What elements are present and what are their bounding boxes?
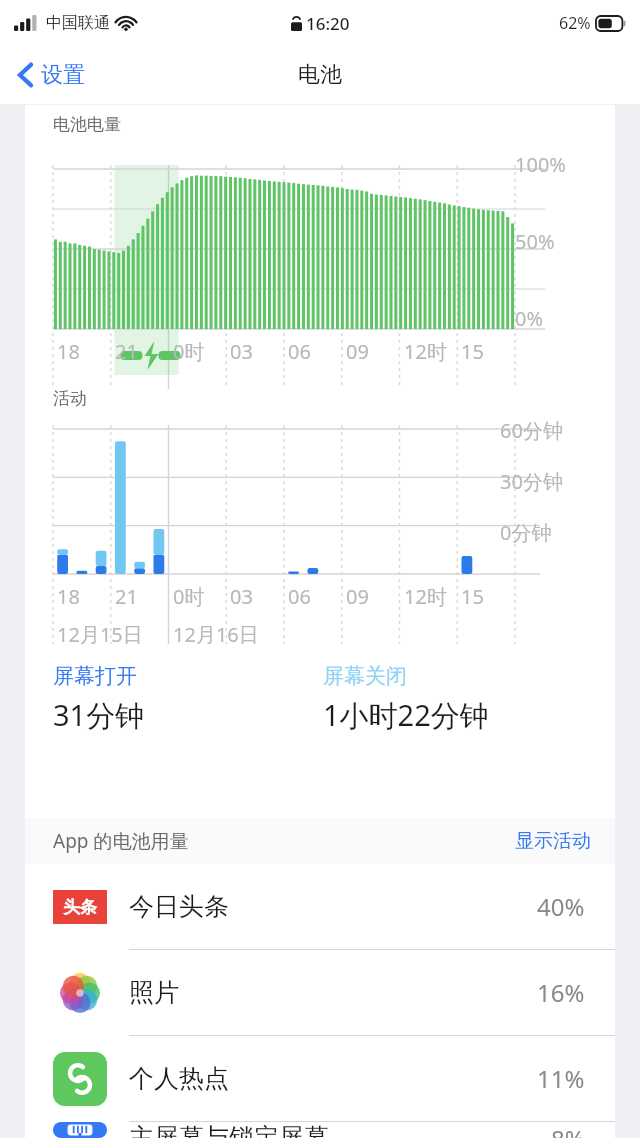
staticText: 60分钟 bbox=[500, 417, 563, 444]
staticText: 31分钟 bbox=[53, 695, 145, 735]
staticText: 0时 bbox=[173, 338, 205, 365]
staticText: 个人热点 bbox=[129, 1063, 229, 1094]
staticText: 12时 bbox=[404, 583, 447, 610]
button[interactable]: 照片 bbox=[25, 950, 615, 1035]
staticText: 设置 bbox=[41, 61, 85, 89]
staticText: 11% bbox=[537, 1062, 585, 1095]
staticText: 06 bbox=[288, 338, 311, 365]
staticText: 40% bbox=[537, 890, 585, 923]
staticText: 09 bbox=[346, 583, 369, 610]
staticText: 09 bbox=[346, 338, 369, 365]
staticText: 12月15日 bbox=[57, 621, 143, 648]
button[interactable]: 头条 bbox=[25, 864, 615, 949]
staticText: 0% bbox=[515, 305, 544, 332]
staticText: 0时 bbox=[173, 583, 205, 610]
staticText: 03 bbox=[230, 583, 253, 610]
staticText: 62% bbox=[559, 12, 591, 34]
staticText: 15 bbox=[461, 583, 484, 610]
button[interactable]: 主屏幕与锁定屏幕 bbox=[25, 1122, 615, 1138]
staticText: 屏幕打开 bbox=[53, 663, 137, 689]
staticText: 06 bbox=[288, 583, 311, 610]
staticText: 照片 bbox=[129, 977, 179, 1008]
staticText: 0分钟 bbox=[500, 519, 552, 546]
staticText: 100% bbox=[515, 151, 566, 178]
staticText: App 的电池用量 bbox=[53, 828, 189, 854]
staticText: 电池 bbox=[298, 61, 342, 89]
staticText: 主屏幕与锁定屏幕 bbox=[129, 1122, 329, 1138]
staticText: 12时 bbox=[404, 338, 447, 365]
staticText: 18 bbox=[57, 338, 80, 365]
staticText: 电池电量 bbox=[53, 114, 121, 135]
button[interactable]: 设置 bbox=[12, 57, 91, 93]
staticText: 活动 bbox=[53, 388, 87, 409]
staticText: 今日头条 bbox=[129, 891, 229, 922]
staticText: 21 bbox=[115, 583, 138, 610]
staticText: 头条 bbox=[63, 897, 97, 918]
staticText: 15 bbox=[461, 338, 484, 365]
staticText: 中国联通 bbox=[46, 13, 110, 33]
staticText: 18 bbox=[57, 583, 80, 610]
button[interactable]: 显示活动 bbox=[515, 823, 615, 859]
staticText: 屏幕关闭 bbox=[323, 663, 407, 689]
staticText: 50% bbox=[515, 228, 555, 255]
staticText: 8% bbox=[551, 1122, 585, 1138]
staticText: 12月16日 bbox=[173, 621, 259, 648]
staticText: 30分钟 bbox=[500, 468, 563, 495]
staticText: 1小时22分钟 bbox=[323, 695, 489, 735]
staticText: 16:20 bbox=[306, 12, 350, 35]
button[interactable]: 个人热点 bbox=[25, 1036, 615, 1121]
staticText: 16% bbox=[537, 976, 585, 1009]
staticText: 21 bbox=[115, 338, 138, 365]
staticText: 显示活动 bbox=[515, 829, 591, 853]
staticText: 03 bbox=[230, 338, 253, 365]
